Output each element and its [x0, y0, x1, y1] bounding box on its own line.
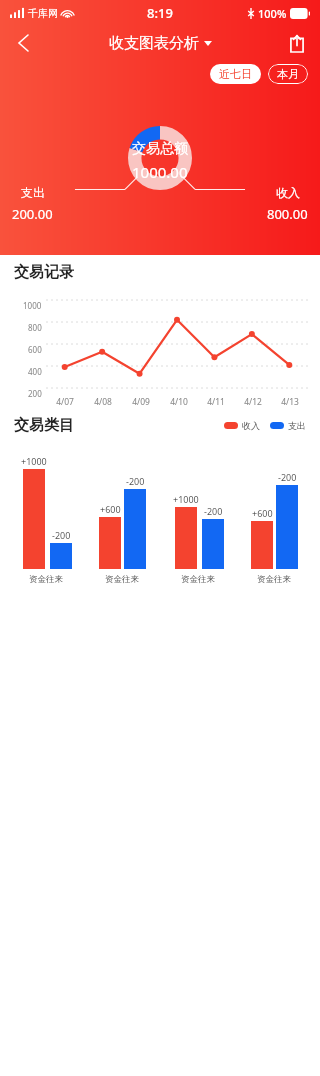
- button[interactable]: 近七日: [210, 64, 261, 84]
- staticText: 4/09: [132, 396, 150, 408]
- staticText: 4/10: [170, 396, 188, 408]
- staticText: 交易总额: [132, 140, 188, 158]
- staticText: 收入: [242, 420, 260, 431]
- staticText: 交易记录: [14, 263, 74, 282]
- staticText: 200: [28, 388, 42, 399]
- staticText: 1000: [23, 300, 42, 311]
- staticText: 8:19: [147, 4, 173, 22]
- staticText: 4/07: [56, 396, 74, 408]
- staticText: 交易类目: [14, 416, 74, 435]
- button[interactable]: Share: [282, 28, 312, 58]
- staticText: 资金往来: [105, 574, 139, 585]
- staticText: +600: [252, 507, 273, 519]
- staticText: 近七日: [219, 67, 252, 81]
- staticText: -200: [126, 475, 145, 487]
- staticText: 800.00: [267, 205, 308, 223]
- staticText: 4/11: [207, 396, 225, 408]
- staticText: 资金往来: [181, 574, 215, 585]
- staticText: 4/08: [94, 396, 112, 408]
- staticText: 200.00: [12, 205, 53, 223]
- staticText: 100%: [258, 6, 287, 21]
- staticText: 4/13: [281, 396, 299, 408]
- staticText: +600: [100, 503, 121, 515]
- staticText: +1000: [21, 455, 47, 467]
- staticText: 收支图表分析: [109, 34, 199, 53]
- button[interactable]: 本月: [268, 64, 308, 84]
- staticText: -200: [278, 471, 297, 483]
- staticText: 4/12: [244, 396, 262, 408]
- staticText: +1000: [173, 493, 199, 505]
- staticText: -200: [204, 505, 223, 517]
- staticText: 资金往来: [29, 574, 63, 585]
- staticText: 400: [28, 366, 42, 377]
- staticText: 支出: [21, 185, 45, 200]
- staticText: 600: [28, 344, 42, 355]
- staticText: 本月: [277, 67, 299, 81]
- staticText: 收入: [276, 185, 300, 200]
- staticText: 1000.00: [132, 162, 188, 182]
- staticText: 800: [28, 322, 42, 333]
- staticText: 资金往来: [257, 574, 291, 585]
- button[interactable]: 收支图表分析: [109, 34, 212, 53]
- staticText: 支出: [288, 420, 306, 431]
- staticText: 千库网: [28, 7, 58, 20]
- button[interactable]: Back: [6, 26, 40, 60]
- staticText: -200: [52, 529, 71, 541]
